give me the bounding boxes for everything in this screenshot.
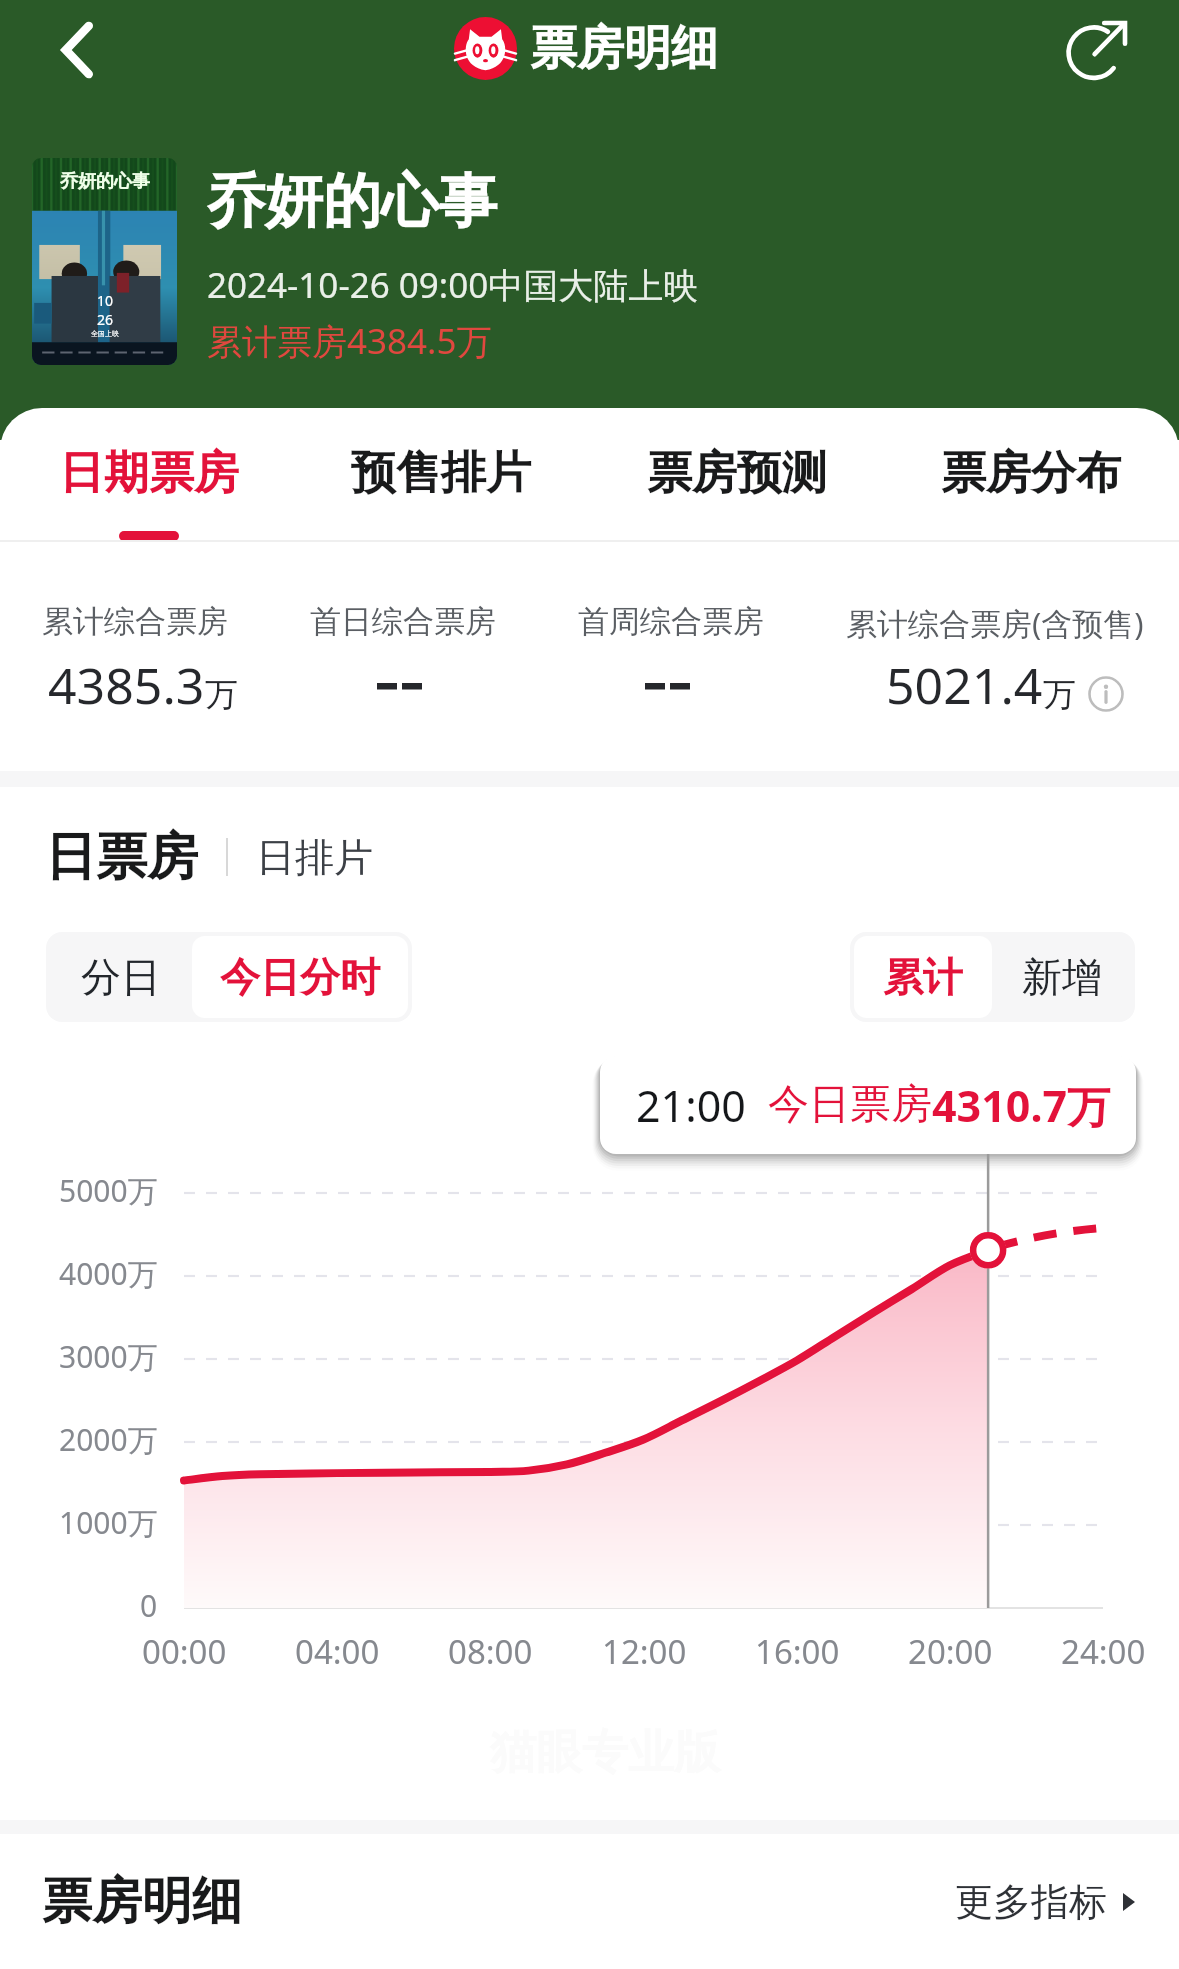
staticText: 累计综合票房	[42, 602, 228, 641]
staticText: 分日	[81, 952, 161, 1002]
staticText: 16:00	[755, 1629, 840, 1674]
staticText: 今日分时	[220, 952, 380, 1002]
staticText: 更多指标	[955, 1878, 1107, 1926]
staticText: 1000万	[59, 1502, 158, 1543]
staticText: 票房明细	[530, 19, 718, 78]
button[interactable]: 更多指标	[955, 1878, 1139, 1926]
staticText: 乔妍的心事	[207, 165, 497, 238]
staticText: 4385.3	[48, 651, 205, 719]
staticText: 3000万	[59, 1336, 158, 1377]
staticText: 12:00	[602, 1629, 687, 1674]
staticText: 5021.4	[886, 651, 1043, 719]
staticText: 20:00	[908, 1629, 993, 1674]
staticText: 首日综合票房	[310, 602, 496, 641]
staticText: 4000万	[59, 1253, 158, 1294]
staticText: 4310.7万	[932, 1076, 1111, 1135]
button[interactable]: 预售排片	[321, 408, 561, 548]
staticText: 日期票房	[59, 445, 239, 502]
staticText: 票房分布	[941, 445, 1121, 502]
staticText: 累计票房4384.5万	[207, 317, 492, 365]
button[interactable]: 累计	[854, 936, 992, 1018]
staticText: 24:00	[1061, 1629, 1146, 1674]
staticText: 0	[140, 1585, 158, 1626]
button[interactable]: 日期票房	[29, 408, 269, 548]
button[interactable]: 分日	[50, 936, 192, 1018]
staticText: 08:00	[448, 1629, 533, 1674]
staticText: 新增	[1022, 952, 1102, 1002]
button[interactable]: Back	[41, 14, 113, 86]
button[interactable]: 新增	[992, 936, 1131, 1018]
staticText: 10	[97, 291, 114, 310]
staticText: 乔妍的心事	[60, 170, 150, 193]
staticText: 累计综合票房(含预售)	[846, 602, 1144, 644]
staticText: 票房预测	[647, 445, 827, 502]
staticText: 票房明细	[42, 1870, 242, 1933]
staticText: 26	[97, 310, 114, 329]
staticText: 00:00	[142, 1629, 227, 1674]
staticText: 全国上映	[91, 329, 119, 338]
button[interactable]: 票房分布	[911, 408, 1151, 548]
button[interactable]: Share	[1058, 8, 1140, 90]
button[interactable]: 票房预测	[617, 408, 857, 548]
staticText: 万	[1043, 674, 1076, 716]
staticText: 21:00	[636, 1076, 746, 1135]
button[interactable]: 日票房	[45, 825, 198, 889]
staticText: 2000万	[59, 1419, 158, 1460]
staticText: 2024-10-26 09:00中国大陆上映	[207, 261, 699, 309]
staticText: 累计	[883, 952, 963, 1002]
button[interactable]: 日排片	[256, 833, 373, 882]
staticText: 04:00	[295, 1629, 380, 1674]
staticText: 今日票房	[768, 1079, 932, 1131]
staticText: 万	[205, 674, 238, 716]
staticText: 预售排片	[351, 445, 531, 502]
button[interactable]: 今日分时	[192, 936, 408, 1018]
staticText: 5000万	[59, 1170, 158, 1211]
staticText: 首周综合票房	[578, 602, 764, 641]
